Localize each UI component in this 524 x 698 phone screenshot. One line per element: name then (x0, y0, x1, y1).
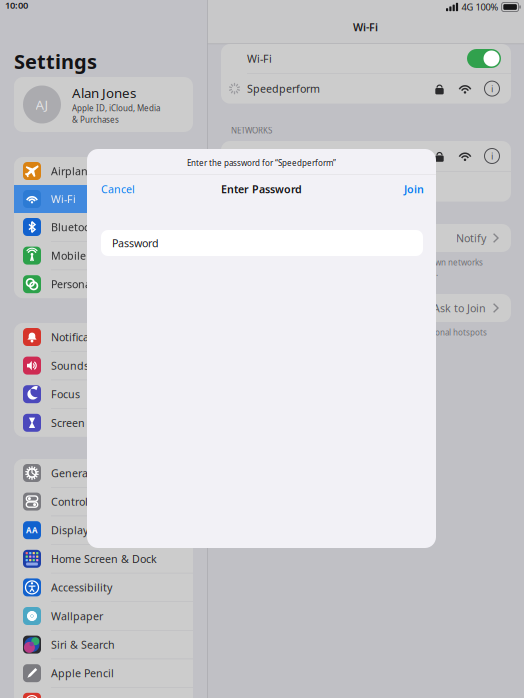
button[interactable]: Focus (14, 380, 193, 408)
staticText: Password (112, 236, 159, 250)
button[interactable]: Network info (484, 81, 500, 97)
staticText: Bluetooth (51, 220, 101, 234)
button[interactable]: Sounds (14, 352, 193, 380)
staticText: Mobile Data (51, 248, 113, 263)
staticText: Sounds (51, 358, 89, 373)
staticText: Notifications (51, 330, 114, 344)
staticText: Home Screen & Dock (51, 552, 157, 566)
button[interactable]: Other… (221, 172, 511, 202)
staticText: Screen Time (51, 416, 113, 430)
staticText: Focus (51, 387, 80, 401)
button[interactable]: Join (336, 172, 436, 206)
button[interactable]: Wallpaper (14, 602, 193, 630)
button[interactable]: Control Centre (14, 488, 193, 516)
button[interactable]: AJ (14, 77, 193, 132)
staticText: 4G 100% (462, 1, 499, 13)
staticText: NETWORKS (231, 125, 272, 136)
staticText: & Purchases (72, 114, 119, 125)
staticText: Alan Jones (72, 84, 136, 102)
staticText: Known networks will be joined automatica… (231, 257, 483, 278)
button[interactable]: Apple Pencil (14, 659, 193, 687)
button[interactable]: General (14, 459, 193, 487)
staticText: Notify (456, 231, 486, 245)
button[interactable]: Network info (484, 148, 500, 164)
button[interactable]: Wi-Fi (14, 185, 193, 213)
staticText: Siri & Search (51, 637, 115, 652)
staticText: i (491, 150, 493, 162)
staticText: Ask to Join (433, 301, 486, 315)
button[interactable]: Personal Hotspot (14, 270, 193, 298)
staticText: Display & Brightness (51, 523, 157, 537)
staticText: Apple Pencil (51, 666, 114, 680)
staticText: 10:00 (5, 0, 28, 11)
staticText: AA (26, 525, 38, 535)
staticText: Enter Password (221, 182, 302, 196)
button[interactable]: Mobile Data (14, 242, 193, 270)
button[interactable]: Ask to Join Networks (221, 224, 511, 252)
button[interactable]: Wi-Fi on (467, 49, 501, 68)
staticText: Join (404, 182, 424, 196)
staticText: i (491, 82, 493, 95)
button[interactable]: Siri & Search (14, 631, 193, 659)
staticText: Wi-Fi (247, 51, 272, 66)
staticText: Enter the password for “Speedperform” (187, 158, 336, 168)
staticText: General (51, 466, 91, 480)
button[interactable]: Accessibility (14, 573, 193, 601)
button[interactable]: Touch ID & Passcode (14, 688, 193, 698)
button[interactable]: AA (14, 516, 193, 544)
button[interactable]: Speedperform (221, 74, 511, 104)
staticText: Control Centre (51, 494, 125, 509)
staticText: Cancel (101, 182, 135, 196)
button[interactable]: Cancel (87, 172, 187, 206)
staticText: Other… (247, 179, 283, 194)
staticText: Wallpaper (51, 609, 103, 623)
button[interactable]: Password (101, 230, 423, 256)
staticText: Xfinity (247, 149, 278, 163)
staticText: Allow this device to automatically disco… (231, 327, 487, 338)
button[interactable]: Auto-Join Hotspot (221, 294, 511, 322)
staticText: Wi-Fi (353, 20, 378, 34)
button[interactable]: Xfinity (221, 141, 511, 171)
staticText: Personal Hotspot (51, 277, 137, 291)
staticText: Accessibility (51, 580, 112, 594)
staticText: Speedperform (247, 81, 320, 96)
staticText: Wi-Fi (51, 192, 76, 206)
staticText: AJ (35, 96, 48, 113)
staticText: Settings (14, 48, 97, 75)
button[interactable]: Screen Time (14, 409, 193, 437)
button[interactable]: Notifications (14, 323, 193, 351)
button[interactable]: Bluetooth (14, 213, 193, 241)
button[interactable]: Home Screen & Dock (14, 545, 193, 573)
staticText: Apple ID, iCloud, Media (72, 103, 160, 113)
button[interactable]: Airplane Mode (14, 157, 193, 185)
staticText: Airplane Mode (51, 164, 126, 178)
